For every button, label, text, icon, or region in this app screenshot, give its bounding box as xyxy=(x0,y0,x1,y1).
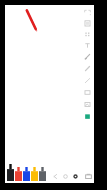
button[interactable]: Text xyxy=(83,41,92,50)
button[interactable]: Shape xyxy=(83,88,92,97)
button[interactable]: Grid xyxy=(83,30,92,39)
button[interactable]: Frames xyxy=(84,172,93,181)
button[interactable]: Redo xyxy=(61,172,70,181)
button[interactable]: Highlighter xyxy=(83,64,92,73)
button[interactable]: Line xyxy=(83,76,92,85)
button[interactable]: Pen xyxy=(15,167,22,181)
button[interactable]: Pen xyxy=(83,52,92,61)
button[interactable]: Image xyxy=(83,100,92,109)
button[interactable]: Pen xyxy=(23,167,30,181)
button[interactable]: Undo xyxy=(51,172,60,181)
button[interactable]: Sticky note xyxy=(83,112,92,121)
button[interactable]: Pen xyxy=(7,164,14,181)
button[interactable]: Select area xyxy=(83,8,92,17)
button[interactable]: Eraser xyxy=(71,172,80,181)
button[interactable]: Frame xyxy=(83,19,92,28)
button[interactable]: Pen xyxy=(39,167,46,181)
button[interactable]: Pen xyxy=(31,167,38,181)
